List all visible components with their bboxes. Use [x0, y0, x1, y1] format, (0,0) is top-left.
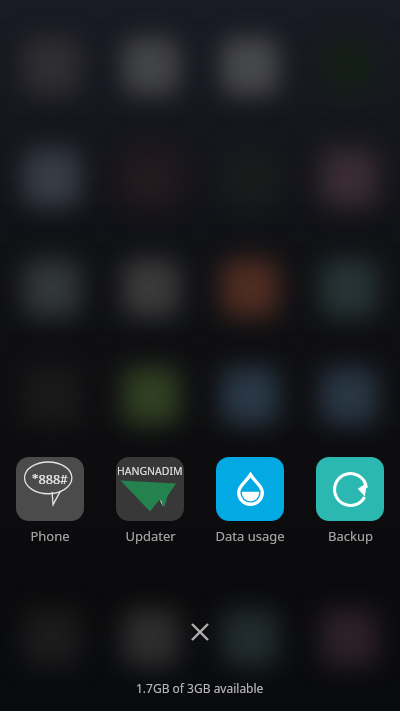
button[interactable]: Backup	[300, 457, 400, 545]
button[interactable]: Close	[176, 608, 224, 656]
button[interactable]: Data usage	[200, 457, 300, 545]
staticText: HANGNADIM	[117, 464, 183, 478]
staticText: Updater	[125, 527, 176, 545]
staticText: Phone	[30, 527, 70, 545]
button[interactable]: HANGNADIM	[100, 457, 200, 545]
staticText: Backup	[328, 527, 373, 545]
staticText: Data usage	[215, 527, 285, 545]
button[interactable]: *888#	[0, 457, 100, 545]
staticText: *888#	[32, 470, 68, 488]
staticText: 1.7GB of 3GB available	[136, 680, 264, 696]
